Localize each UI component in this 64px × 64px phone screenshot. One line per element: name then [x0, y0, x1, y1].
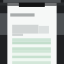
button[interactable] [4, 14, 16, 23]
button[interactable] [6, 1, 14, 3]
